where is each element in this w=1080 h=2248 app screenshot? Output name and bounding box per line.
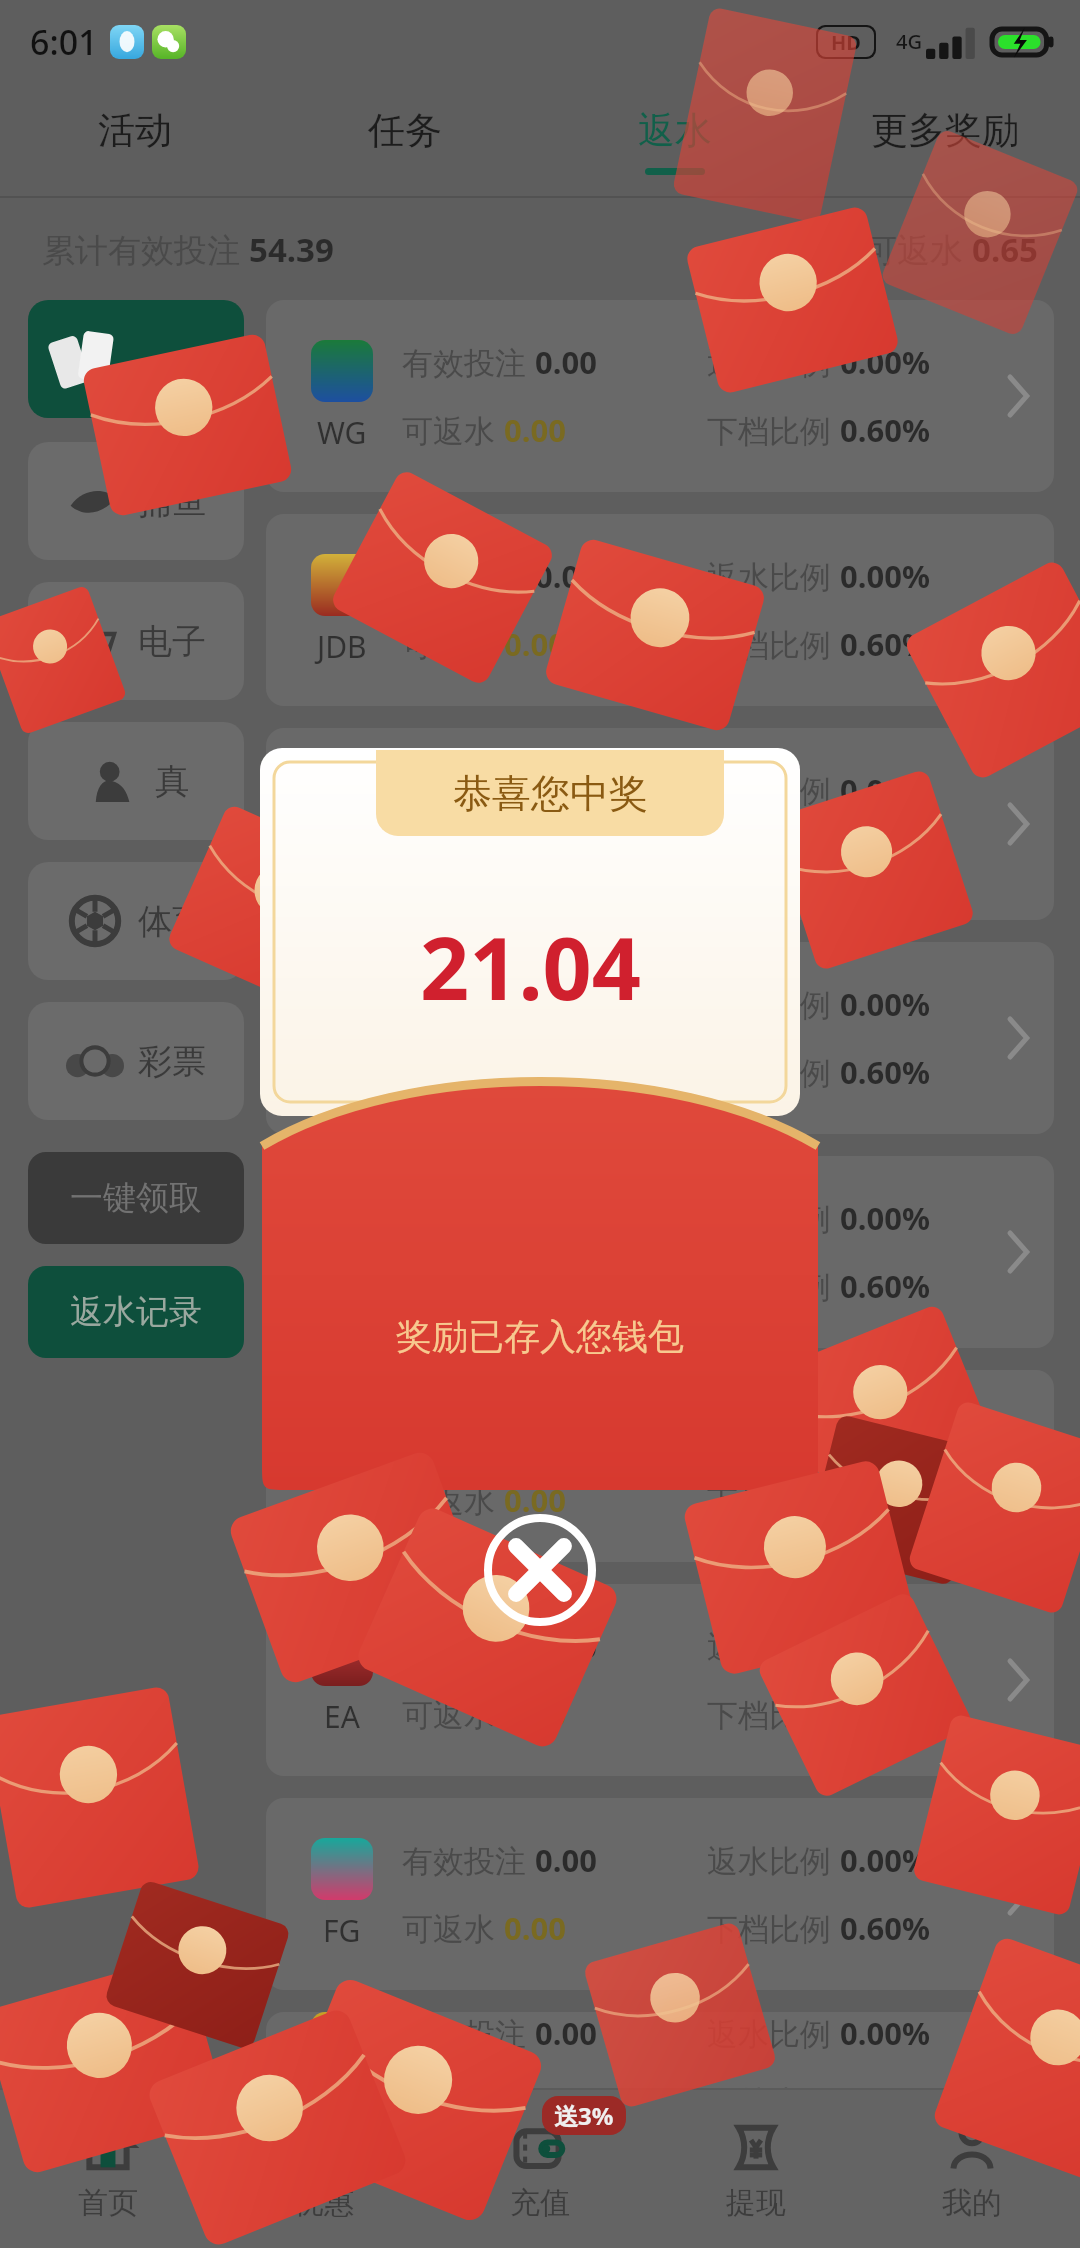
button[interactable]: KM <box>266 2012 1054 2088</box>
staticText: 恭喜您中奖 <box>453 769 648 818</box>
staticText: 0.00% <box>840 769 930 811</box>
button[interactable]: FG <box>266 1798 1054 1990</box>
staticText: 0.60% <box>840 623 930 665</box>
button[interactable]: BG <box>266 1370 1054 1562</box>
staticText: 54.39 <box>249 227 334 272</box>
button[interactable]: 返水记录 <box>28 1266 244 1358</box>
staticText: 充值 <box>510 2184 570 2222</box>
staticText: 0.00 <box>504 1693 566 1735</box>
button[interactable]: 首页 <box>0 2088 216 2248</box>
button[interactable]: JDB <box>266 514 1054 706</box>
button[interactable]: 返水 <box>540 84 810 198</box>
button[interactable]: 提现 <box>648 2088 864 2248</box>
button[interactable]: 捕鱼 <box>28 442 244 560</box>
staticText: 0.60% <box>840 1051 930 1093</box>
staticText: 可返水 <box>402 1693 504 1735</box>
staticText: 下档比例 <box>707 1051 840 1093</box>
button[interactable]: WG <box>266 300 1054 492</box>
staticText: WG <box>317 412 367 453</box>
button[interactable]: 我的 <box>864 2088 1080 2248</box>
staticText: 0.60% <box>840 837 930 879</box>
staticText: 下档比例 <box>707 1907 840 1949</box>
staticText: 可返水 <box>402 1479 504 1521</box>
staticText: 提现 <box>726 2184 786 2222</box>
staticText: 有效投注 <box>402 983 535 1025</box>
button[interactable]: EA <box>266 1584 1054 1776</box>
button[interactable]: 电子 <box>28 582 244 700</box>
staticText: 0.00 <box>535 983 597 1025</box>
button[interactable]: 送3% <box>432 2088 648 2248</box>
button[interactable]: PP <box>266 942 1054 1134</box>
staticText: 0.00 <box>504 2080 566 2088</box>
staticText: 4G <box>896 28 922 55</box>
staticText: 0.60% <box>840 1265 930 1307</box>
staticText: 返水比例 <box>707 1625 840 1667</box>
staticText: 一键领取 <box>70 1177 202 1219</box>
staticText: 下档比例 <box>707 1693 840 1735</box>
staticText: 返水比例 <box>707 341 840 383</box>
staticText: 0.00% <box>840 1839 930 1881</box>
staticText: 0.00 <box>535 769 597 811</box>
staticText: 返水比例 <box>707 1411 840 1453</box>
staticText: 电子 <box>138 620 206 663</box>
staticText: 有效投注 <box>402 341 535 383</box>
button[interactable]: 优惠 <box>216 2088 432 2248</box>
staticText: 0.00 <box>535 1625 597 1667</box>
staticText: EA <box>324 1696 360 1737</box>
staticText: 有效投注 <box>402 1839 535 1881</box>
button[interactable]: 任务 <box>270 84 540 198</box>
staticText: 返水比例 <box>707 769 840 811</box>
staticText: 0.00 <box>504 1051 566 1093</box>
staticText: 送3% <box>554 2099 614 2132</box>
staticText: 可返水 <box>402 2080 504 2088</box>
staticText: 下档比例 <box>707 623 840 665</box>
staticText: 下档比例 <box>707 837 840 879</box>
staticText: 0.00% <box>840 341 930 383</box>
staticText: 彩票 <box>138 1040 206 1083</box>
staticText: 0.00% <box>840 1411 930 1453</box>
staticText: 返水比例 <box>707 1839 840 1881</box>
staticText: 下档比例 <box>707 2080 840 2088</box>
staticText: 0.60% <box>840 409 930 451</box>
button[interactable] <box>28 300 244 418</box>
button[interactable]: 更多奖励 <box>810 84 1080 198</box>
staticText: 0.00 <box>504 1907 566 1949</box>
button[interactable]: MG <box>266 1156 1054 1348</box>
staticText: 返水比例 <box>707 983 840 1025</box>
staticText: JDB <box>317 626 367 667</box>
staticText: 0.00% <box>840 983 930 1025</box>
staticText: 0.00 <box>535 555 597 597</box>
button[interactable]: 关闭 <box>482 1512 598 1628</box>
staticText: 可返水 <box>864 227 972 272</box>
staticText: 0.00 <box>535 1839 597 1881</box>
staticText: 可返水 <box>402 1907 504 1949</box>
staticText: 6:01 <box>30 19 98 65</box>
staticText: 下档比例 <box>707 409 840 451</box>
staticText: 0.00% <box>840 1625 930 1667</box>
staticText: 0.00 <box>504 1479 566 1521</box>
button[interactable]: PG <box>266 728 1054 920</box>
staticText: 21.04 <box>420 908 641 1025</box>
staticText: 有效投注 <box>402 555 535 597</box>
staticText: 0.00 <box>535 341 597 383</box>
button[interactable]: 真 <box>28 722 244 840</box>
staticText: 返水比例 <box>707 2012 840 2054</box>
staticText: 任务 <box>368 107 442 154</box>
staticText: 有效投注 <box>402 1625 535 1667</box>
button[interactable]: 活动 <box>0 84 270 198</box>
staticText: 返水 <box>638 107 712 154</box>
button[interactable]: 一键领取 <box>28 1152 244 1244</box>
staticText: 奖励已存入您钱包 <box>396 1314 684 1359</box>
staticText: 有效投注 <box>402 769 535 811</box>
button[interactable]: 彩票 <box>28 1002 244 1120</box>
staticText: BG <box>321 1482 363 1523</box>
button[interactable]: 体育 <box>28 862 244 980</box>
